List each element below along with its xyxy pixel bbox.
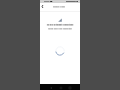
staticText: Media codes [53,5,66,8]
button[interactable]: Recents [67,85,72,90]
staticText: Please check your connection [40,28,80,30]
staticText: Media codes [53,6,66,9]
staticText: Please check your connection [40,27,80,29]
button[interactable]: Back [48,85,53,90]
button[interactable]: Back [40,2,45,10]
staticText: No any internet connection [40,24,80,27]
staticText: No any internet connection [40,23,80,26]
button[interactable]: Home [58,85,63,90]
